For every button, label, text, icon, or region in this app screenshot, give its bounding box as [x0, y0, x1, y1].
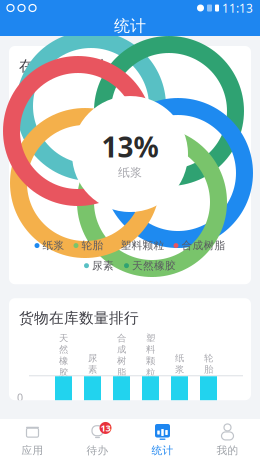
- staticText: 塑料颗粒: [146, 332, 155, 378]
- staticText: 应用: [21, 444, 43, 457]
- staticText: 在库融资占比: [19, 57, 109, 75]
- staticText: 轮胎: [204, 352, 213, 375]
- staticText: 13: [100, 422, 110, 434]
- button[interactable]: 我的: [195, 419, 260, 461]
- staticText: 纸浆: [175, 352, 184, 375]
- staticText: 轮胎: [81, 239, 103, 252]
- staticText: 尿素: [88, 352, 97, 375]
- staticText: 合成树脂: [181, 239, 225, 252]
- staticText: 货物在库数量排行: [19, 309, 139, 327]
- staticText: 待办: [86, 444, 108, 457]
- button[interactable]: 13: [65, 419, 130, 461]
- staticText: 合成树脂: [117, 332, 126, 378]
- staticText: 13%: [101, 128, 158, 165]
- staticText: 尿素: [92, 259, 114, 272]
- staticText: 天然橡胶: [132, 259, 176, 272]
- staticText: 天然橡胶: [59, 332, 68, 378]
- staticText: 11:13: [222, 0, 253, 16]
- staticText: 统计: [151, 444, 173, 457]
- staticText: 塑料颗粒: [120, 239, 164, 252]
- staticText: 0: [17, 390, 23, 404]
- staticText: 纸浆: [42, 239, 64, 252]
- staticText: 统计: [114, 16, 146, 36]
- button[interactable]: 应用: [0, 419, 65, 461]
- staticText: 纸浆: [118, 165, 142, 180]
- button[interactable]: 统计: [130, 419, 195, 461]
- staticText: 我的: [216, 444, 238, 457]
